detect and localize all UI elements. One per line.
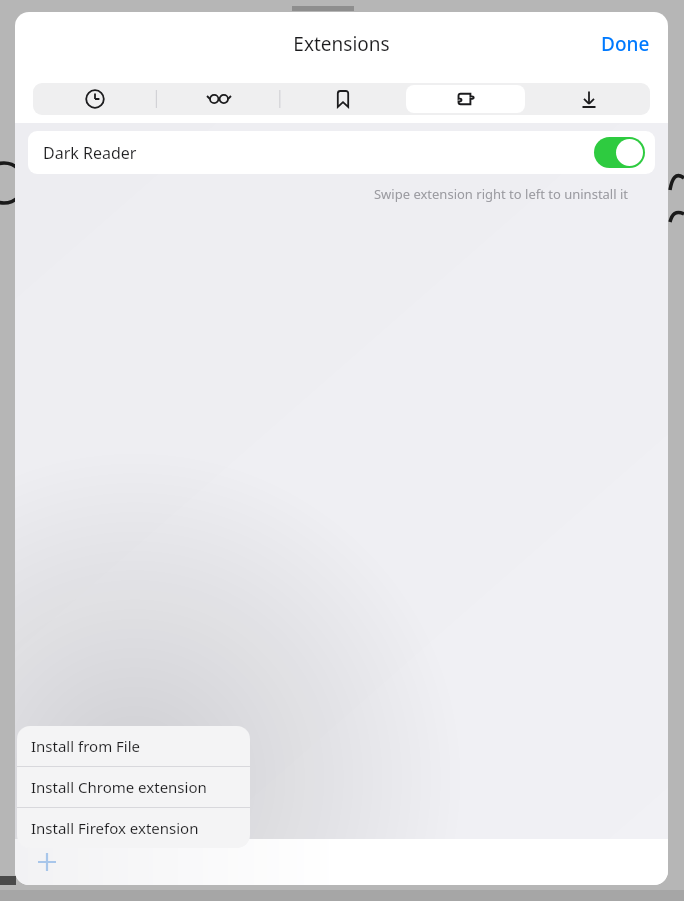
staticText: Install Chrome extension [31,777,207,797]
button[interactable]: Install from File [17,726,250,766]
button[interactable]: Extensions [406,85,525,113]
button[interactable]: Install Firefox extension [17,808,250,848]
staticText: Swipe extension right to left to uninsta… [15,185,628,203]
button[interactable]: Downloads [529,85,648,113]
staticText: Dark Reader [43,142,137,164]
button[interactable]: Bookmarks [283,85,402,113]
staticText: Extensions [293,31,390,57]
staticText: Done [601,31,650,57]
button[interactable]: Done [583,21,668,67]
staticText: Install Firefox extension [31,818,199,838]
button[interactable]: Dark Reader [28,131,655,174]
button[interactable]: Add extension [27,842,67,882]
button[interactable]: Install Chrome extension [17,767,250,807]
button[interactable]: Toggle Dark Reader [594,137,645,168]
button[interactable]: Reading List [159,85,279,113]
button[interactable]: History [35,85,155,113]
staticText: Install from File [31,736,141,756]
